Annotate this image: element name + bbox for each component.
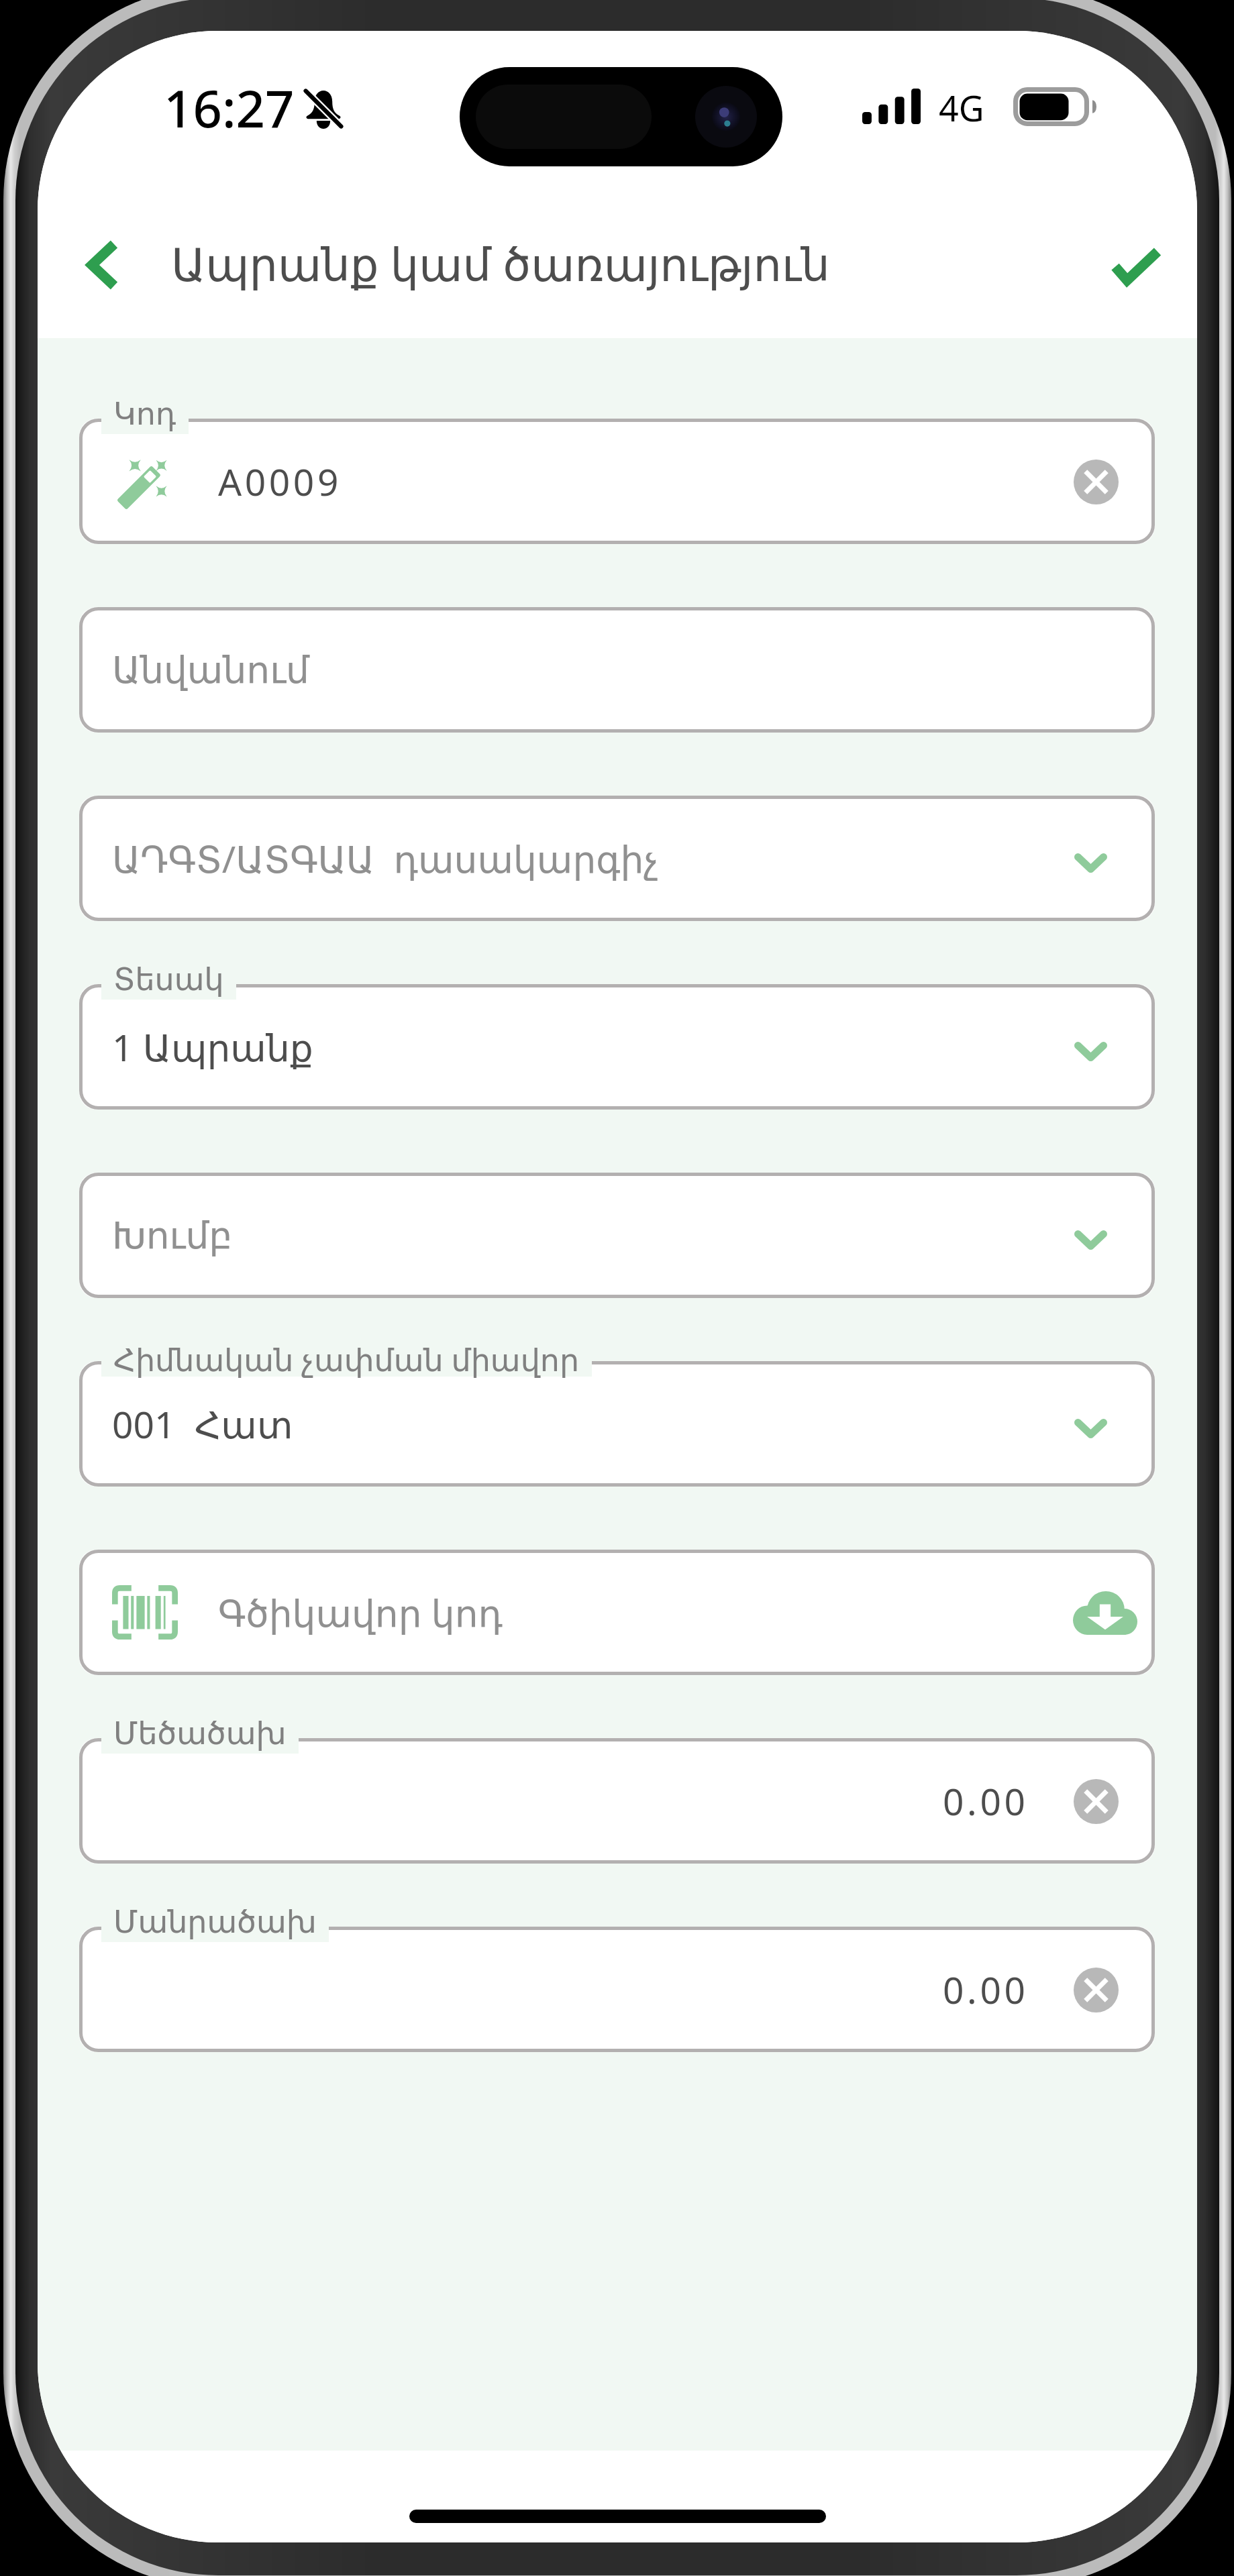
button[interactable]: Գծիկավոր կոդ xyxy=(79,1550,1155,1675)
staticText: 001 Հատ xyxy=(112,1399,293,1449)
button[interactable]: Save xyxy=(1092,222,1180,309)
button[interactable]: Clear xyxy=(1062,1956,1129,2023)
staticText: 0.00 xyxy=(943,1776,1029,1826)
button[interactable]: Անվանում xyxy=(79,607,1155,733)
button[interactable]: Խումբ xyxy=(79,1173,1155,1298)
button[interactable]: Open list xyxy=(1057,1018,1124,1085)
button[interactable]: Download xyxy=(1072,1580,1138,1646)
staticText: Հիմնական չափման միավոր xyxy=(113,1338,580,1381)
staticText: A0009 xyxy=(218,456,342,506)
button[interactable]: Open list xyxy=(1057,1206,1124,1273)
button[interactable]: A0009 xyxy=(79,419,1155,544)
button[interactable]: 0.00 xyxy=(79,1927,1155,2052)
button[interactable]: 001 Հատ xyxy=(79,1361,1155,1487)
staticText: 4G xyxy=(939,84,984,131)
button[interactable]: Back xyxy=(58,216,139,297)
button[interactable]: Open list xyxy=(1057,829,1124,896)
staticText: 1 Ապրանք xyxy=(112,1022,313,1072)
staticText: Մանրածախ xyxy=(113,1904,317,1940)
staticText: Անվանում xyxy=(112,649,309,692)
staticText: 0.00 xyxy=(943,1964,1029,2015)
staticText: Խումբ xyxy=(112,1214,233,1257)
staticText: Գծիկավոր կոդ xyxy=(218,1587,503,1638)
button[interactable]: Open list xyxy=(1057,1395,1124,1462)
staticText: ԱԴԳՏ/ԱՏԳԱԱ դասակարգիչ xyxy=(112,833,659,883)
staticText: Մեծածախ xyxy=(113,1715,287,1752)
button[interactable]: 1 Ապրանք xyxy=(79,984,1155,1110)
button[interactable]: ԱԴԳՏ/ԱՏԳԱԱ դասակարգիչ xyxy=(79,796,1155,921)
button[interactable]: 0.00 xyxy=(79,1738,1155,1864)
button[interactable]: Clear xyxy=(1062,448,1129,515)
staticText: Կոդ xyxy=(113,396,176,432)
button[interactable]: Clear xyxy=(1062,1768,1129,1835)
staticText: Ապրանք կամ ծառայություն xyxy=(171,233,830,294)
staticText: Տեսակ xyxy=(113,961,224,998)
staticText: 16:27 xyxy=(164,73,295,143)
